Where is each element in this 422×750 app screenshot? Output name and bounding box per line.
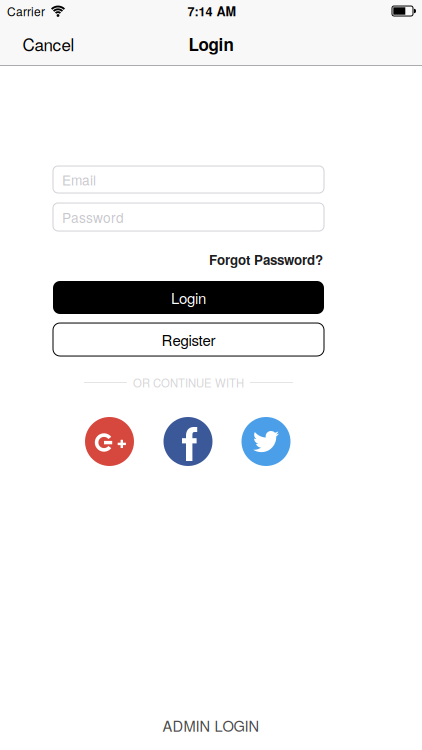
button[interactable]: Register: [53, 323, 324, 356]
staticText: ADMIN LOGIN: [162, 715, 259, 736]
button[interactable]: Login: [53, 281, 324, 314]
staticText: Login: [171, 287, 206, 308]
button[interactable]: Email: [53, 166, 324, 193]
button[interactable]: Cancel: [22, 32, 74, 56]
button[interactable]: ADMIN LOGIN: [162, 715, 259, 736]
staticText: Carrier: [7, 2, 45, 20]
button[interactable]: Continue with Twitter: [241, 417, 290, 466]
staticText: Cancel: [22, 32, 74, 56]
staticText: Login: [188, 32, 233, 56]
button[interactable]: Forgot Password?: [209, 250, 323, 269]
staticText: Forgot Password?: [209, 250, 323, 269]
staticText: Email: [62, 170, 96, 189]
staticText: OR CONTINUE WITH: [133, 374, 244, 391]
staticText: Password: [62, 207, 124, 227]
staticText: Register: [161, 329, 215, 350]
button[interactable]: Continue with Google: [85, 417, 134, 466]
staticText: 7:14 AM: [187, 2, 236, 20]
button[interactable]: Continue with Facebook: [163, 417, 212, 466]
button[interactable]: Password: [53, 203, 324, 231]
